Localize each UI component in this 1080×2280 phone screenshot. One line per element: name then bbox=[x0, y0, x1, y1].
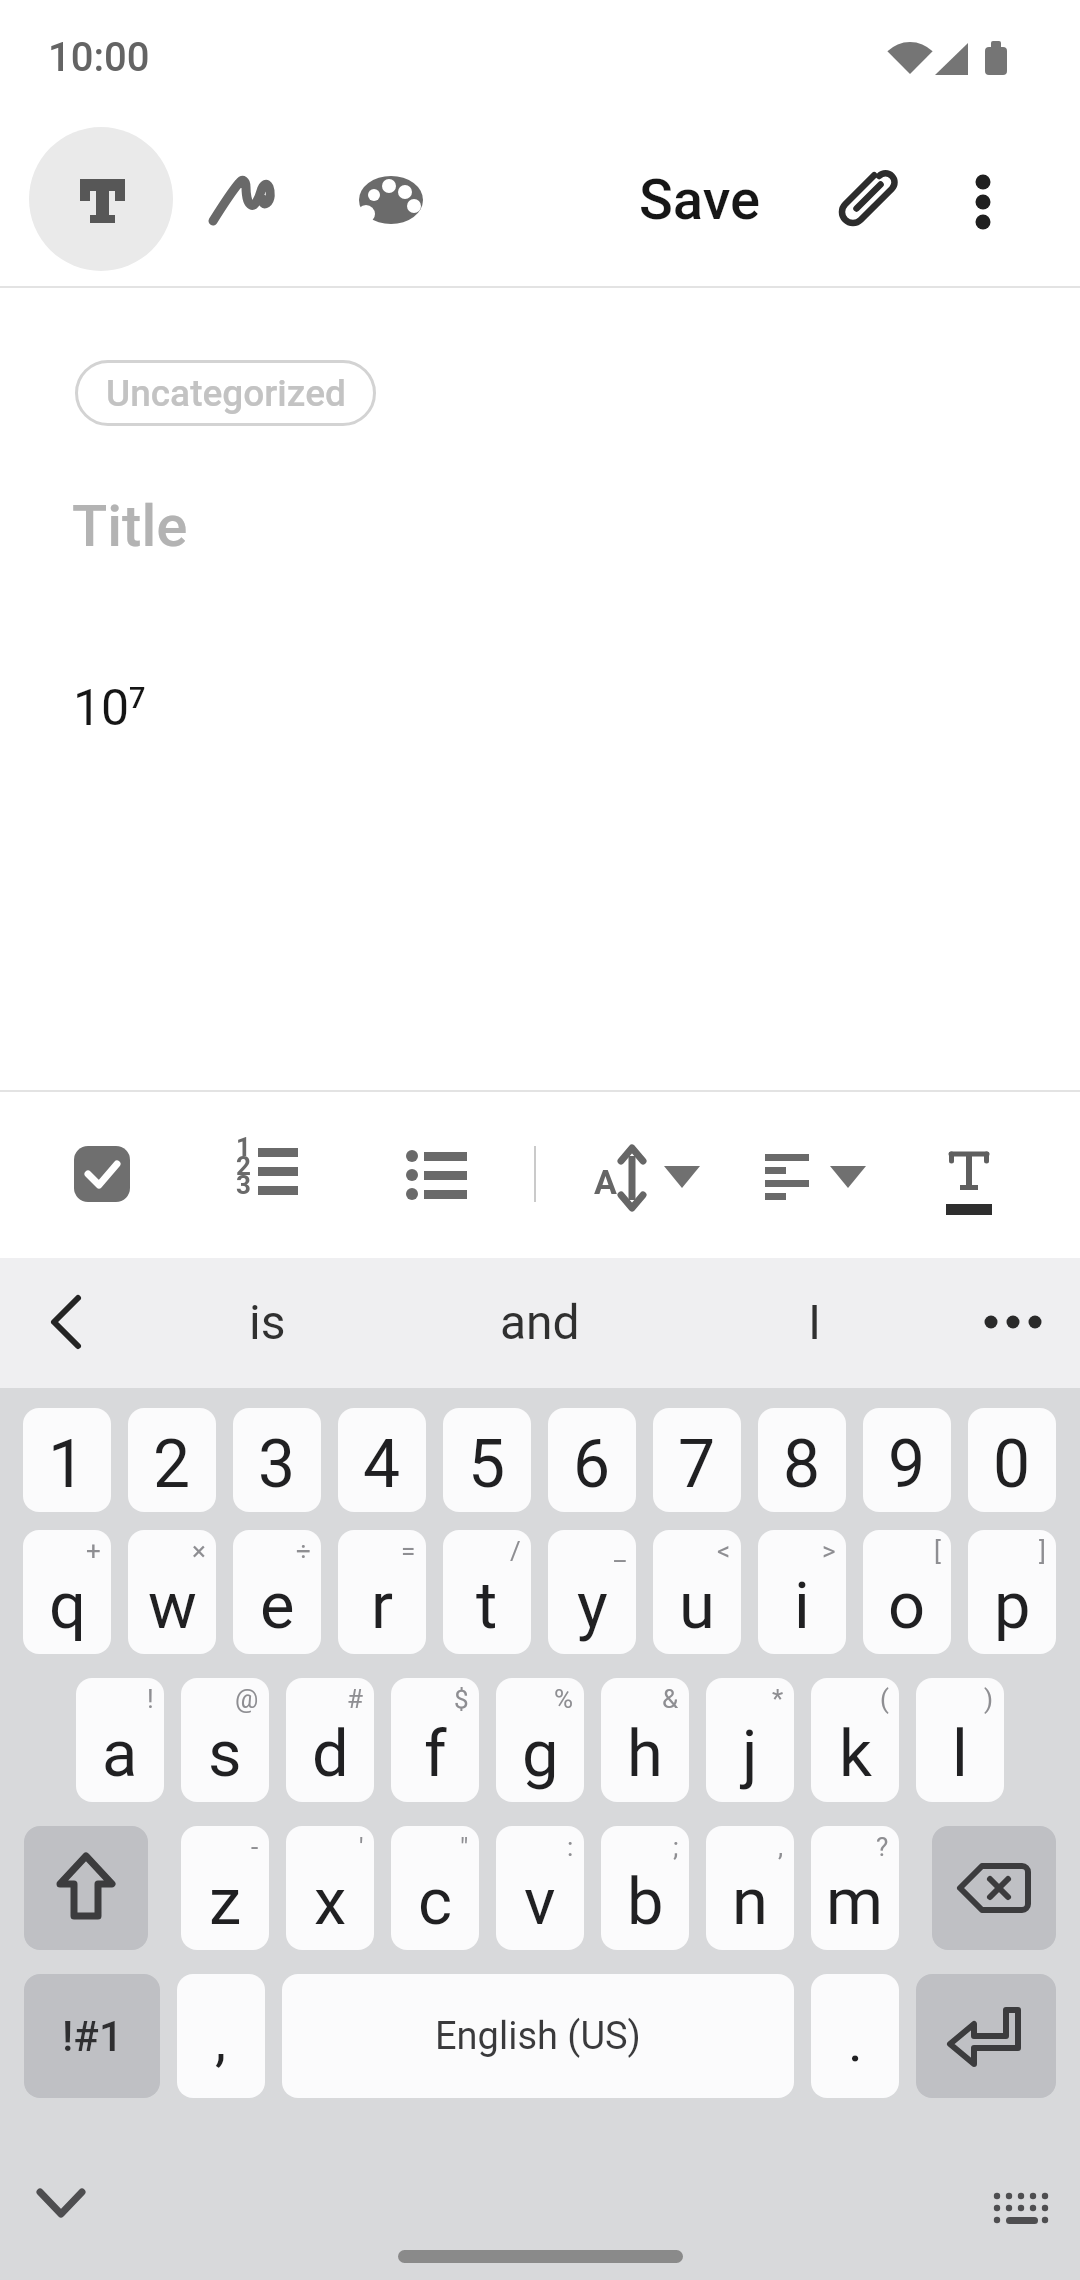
staticText: ] bbox=[1039, 1536, 1046, 1566]
button[interactable]: Save bbox=[620, 160, 780, 240]
staticText: and bbox=[500, 1294, 580, 1350]
staticText: & bbox=[662, 1684, 679, 1714]
button[interactable]: 7 bbox=[653, 1408, 741, 1512]
staticText: , bbox=[215, 2008, 227, 2074]
staticText: ? bbox=[876, 1832, 889, 1862]
button[interactable]: % bbox=[496, 1678, 584, 1802]
button[interactable]: , bbox=[706, 1826, 794, 1950]
staticText: Uncategorized bbox=[106, 372, 346, 415]
staticText: 7 bbox=[129, 681, 146, 715]
staticText: x bbox=[314, 1864, 347, 1940]
button[interactable] bbox=[74, 1146, 130, 1202]
staticText: ' bbox=[359, 1832, 364, 1862]
button[interactable]: 2 bbox=[128, 1408, 216, 1512]
staticText: 9 bbox=[888, 1426, 926, 1503]
button[interactable]: ' bbox=[286, 1826, 374, 1950]
button[interactable]: - bbox=[181, 1826, 269, 1950]
staticText: 10 bbox=[73, 679, 130, 738]
button[interactable]: I bbox=[725, 1284, 905, 1360]
button[interactable]: * bbox=[706, 1678, 794, 1802]
button[interactable]: and bbox=[450, 1284, 630, 1360]
button[interactable]: 1 bbox=[23, 1408, 111, 1512]
button[interactable]: × bbox=[128, 1530, 216, 1654]
staticText: Title bbox=[72, 492, 188, 560]
button[interactable] bbox=[24, 2166, 100, 2242]
button[interactable] bbox=[205, 160, 285, 240]
staticText: i bbox=[794, 1568, 810, 1644]
button[interactable] bbox=[825, 160, 905, 240]
button[interactable]: ÷ bbox=[233, 1530, 321, 1654]
button[interactable]: @ bbox=[181, 1678, 269, 1802]
button[interactable]: 1 bbox=[234, 1138, 304, 1210]
staticText: _ bbox=[614, 1536, 626, 1566]
staticText: a bbox=[102, 1716, 138, 1792]
staticText: u bbox=[679, 1568, 715, 1644]
button[interactable]: 5 bbox=[443, 1408, 531, 1512]
button[interactable] bbox=[960, 1284, 1064, 1360]
staticText: e bbox=[260, 1568, 295, 1644]
staticText: + bbox=[86, 1536, 101, 1566]
button[interactable]: = bbox=[338, 1530, 426, 1654]
button[interactable]: $ bbox=[391, 1678, 479, 1802]
button[interactable] bbox=[24, 1826, 148, 1950]
staticText: 1 bbox=[236, 1132, 251, 1162]
staticText: z bbox=[209, 1864, 242, 1940]
button[interactable] bbox=[29, 127, 173, 271]
button[interactable]: # bbox=[286, 1678, 374, 1802]
button[interactable]: 6 bbox=[548, 1408, 636, 1512]
staticText: I bbox=[808, 1294, 822, 1350]
button[interactable]: + bbox=[23, 1530, 111, 1654]
button[interactable]: ] bbox=[968, 1530, 1056, 1654]
staticText: t bbox=[476, 1568, 498, 1644]
staticText: b bbox=[627, 1864, 664, 1940]
button[interactable]: & bbox=[601, 1678, 689, 1802]
button[interactable]: 4 bbox=[338, 1408, 426, 1512]
button[interactable] bbox=[975, 2170, 1059, 2240]
button[interactable] bbox=[916, 1974, 1056, 2098]
staticText: d bbox=[312, 1716, 349, 1792]
staticText: 5 bbox=[468, 1426, 506, 1503]
staticText: [ bbox=[934, 1536, 941, 1566]
button[interactable] bbox=[932, 1826, 1056, 1950]
button[interactable]: / bbox=[443, 1530, 531, 1654]
button[interactable]: > bbox=[758, 1530, 846, 1654]
staticText: 2 bbox=[153, 1426, 191, 1503]
button[interactable]: _ bbox=[548, 1530, 636, 1654]
button[interactable]: is bbox=[177, 1284, 357, 1360]
button[interactable] bbox=[943, 160, 1023, 240]
button[interactable]: !#1 bbox=[24, 1974, 160, 2098]
button[interactable]: ; bbox=[601, 1826, 689, 1950]
button[interactable]: A bbox=[580, 1138, 710, 1214]
staticText: 2 bbox=[236, 1151, 251, 1181]
staticText: , bbox=[778, 1832, 784, 1862]
button[interactable] bbox=[402, 1138, 474, 1210]
button[interactable] bbox=[30, 1284, 106, 1360]
button[interactable]: ! bbox=[76, 1678, 164, 1802]
button[interactable]: [ bbox=[863, 1530, 951, 1654]
button[interactable]: 9 bbox=[863, 1408, 951, 1512]
staticText: n bbox=[732, 1864, 768, 1940]
button[interactable] bbox=[938, 1138, 1000, 1222]
staticText: * bbox=[772, 1684, 784, 1714]
staticText: p bbox=[994, 1568, 1031, 1644]
button[interactable]: 8 bbox=[758, 1408, 846, 1512]
button[interactable]: , bbox=[177, 1974, 265, 2098]
staticText: y bbox=[577, 1568, 608, 1644]
button[interactable]: ( bbox=[811, 1678, 899, 1802]
button[interactable]: ) bbox=[916, 1678, 1004, 1802]
button[interactable]: English (US) bbox=[282, 1974, 794, 2098]
button[interactable]: " bbox=[391, 1826, 479, 1950]
button[interactable] bbox=[350, 162, 430, 238]
button[interactable]: Uncategorized bbox=[75, 360, 376, 426]
button[interactable] bbox=[765, 1138, 875, 1214]
button[interactable]: . bbox=[811, 1974, 899, 2098]
staticText: 3 bbox=[258, 1426, 296, 1503]
button[interactable]: 3 bbox=[233, 1408, 321, 1512]
staticText: l bbox=[952, 1716, 968, 1792]
staticText: / bbox=[510, 1536, 521, 1566]
button[interactable]: 0 bbox=[968, 1408, 1056, 1512]
button[interactable]: < bbox=[653, 1530, 741, 1654]
button[interactable]: : bbox=[496, 1826, 584, 1950]
staticText: j bbox=[742, 1716, 758, 1792]
button[interactable]: ? bbox=[811, 1826, 899, 1950]
